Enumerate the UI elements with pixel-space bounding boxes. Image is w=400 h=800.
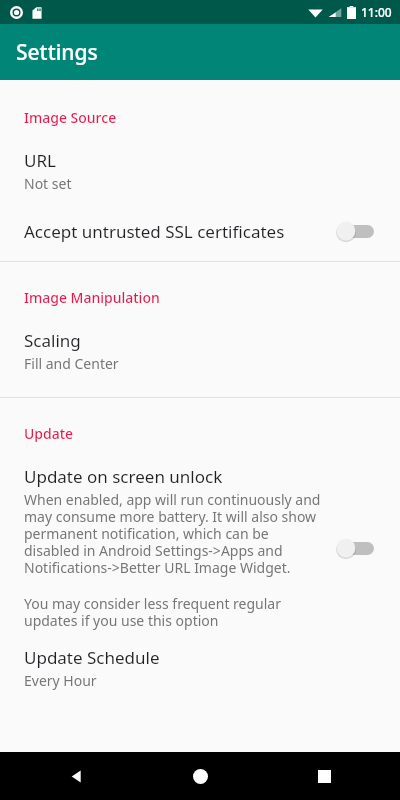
staticText: Every Hour — [24, 671, 97, 690]
staticText: Update on screen unlock — [24, 465, 223, 488]
button[interactable]: Back — [56, 756, 96, 796]
staticText: Update Schedule — [24, 646, 160, 669]
staticText: Scaling — [24, 329, 81, 352]
staticText: Accept untrusted SSL certificates — [24, 220, 324, 243]
staticText: Not set — [24, 174, 72, 193]
button[interactable]: Update Schedule — [0, 646, 400, 690]
staticText: URL — [24, 149, 56, 172]
staticText: Update — [24, 424, 376, 443]
staticText: Settings — [16, 38, 98, 67]
button[interactable]: Recents — [304, 756, 344, 796]
button[interactable]: URL — [0, 149, 400, 193]
button[interactable]: Accept untrusted SSL certificates — [0, 219, 400, 243]
staticText: When enabled, app will run continuously … — [24, 490, 326, 577]
button[interactable]: Scaling — [0, 329, 400, 373]
staticText: You may consider less frequent regular u… — [24, 594, 326, 630]
button[interactable]: Toggle off — [336, 536, 376, 560]
staticText: Fill and Center — [24, 354, 119, 373]
button[interactable]: Toggle off — [336, 219, 376, 243]
staticText: 11:00 — [361, 4, 392, 20]
staticText: Image Source — [24, 108, 376, 127]
button[interactable]: Update on screen unlock — [0, 465, 400, 630]
button[interactable]: Home — [180, 756, 220, 796]
staticText: Image Manipulation — [24, 288, 376, 307]
